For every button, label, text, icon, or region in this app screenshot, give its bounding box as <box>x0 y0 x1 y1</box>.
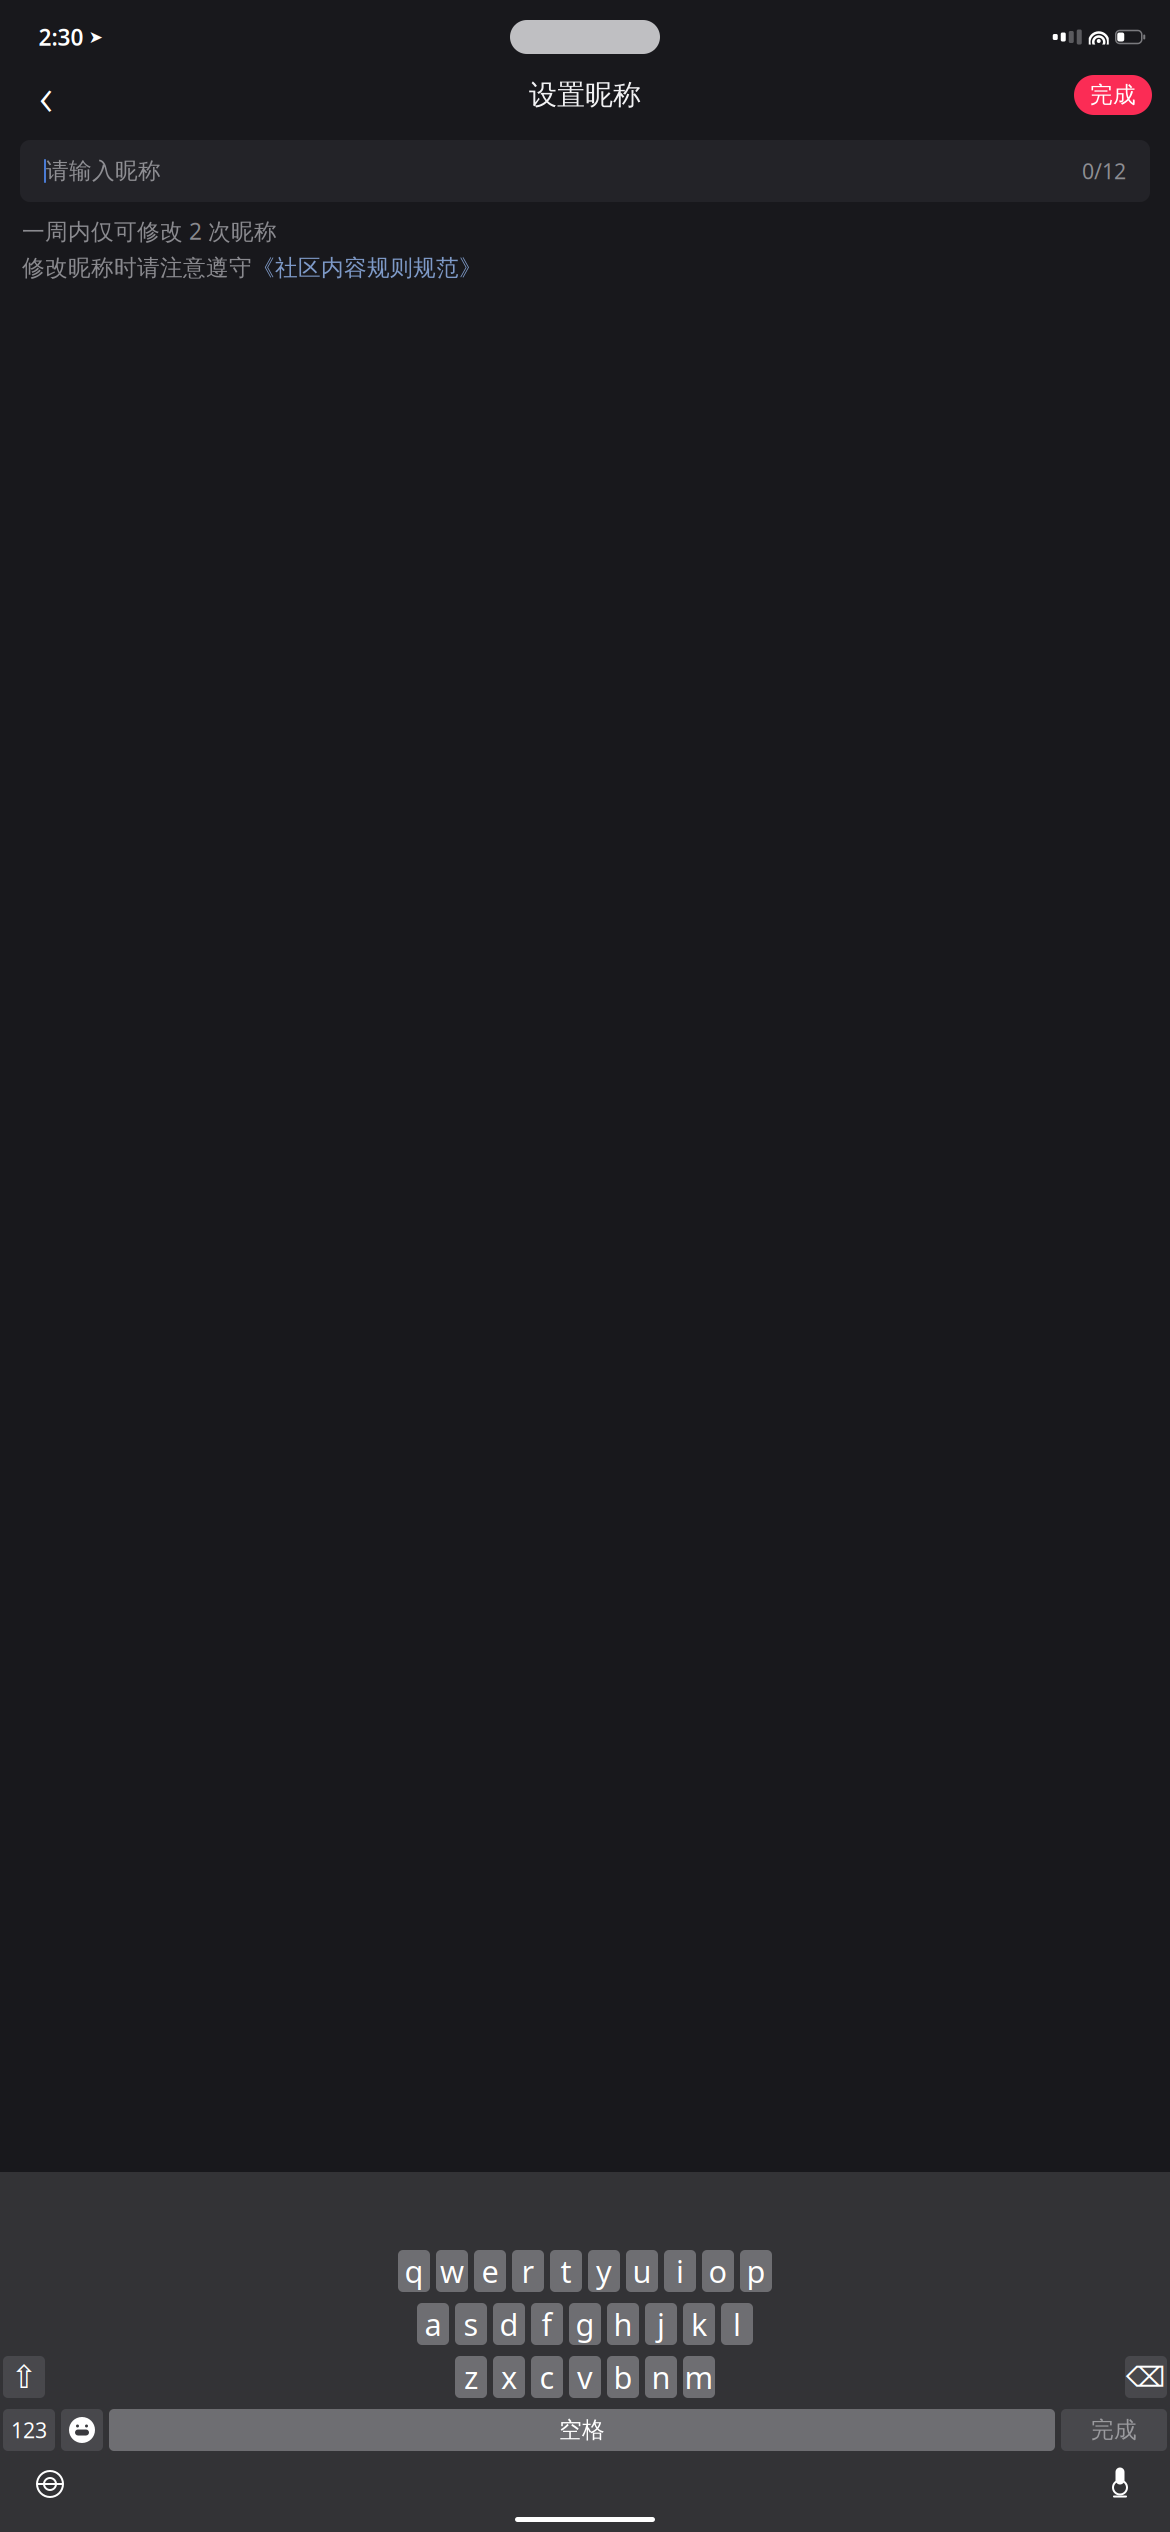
staticText: 完成 <box>1090 81 1136 109</box>
staticText: a <box>424 2304 441 2344</box>
staticText: 0/12 <box>1082 157 1126 185</box>
button[interactable]: b <box>607 2356 639 2398</box>
button[interactable]: 删除 <box>1125 2356 1167 2398</box>
staticText: m <box>684 2357 713 2397</box>
staticText: k <box>691 2304 707 2344</box>
button[interactable]: 返回 <box>18 71 74 119</box>
staticText: 空格 <box>559 2416 605 2444</box>
button[interactable]: 语音输入 <box>1090 2457 1150 2511</box>
staticText: 一周内仅可修改 2 次昵称 <box>22 216 277 246</box>
button[interactable]: n <box>645 2356 677 2398</box>
button[interactable]: p <box>740 2250 772 2292</box>
staticText: d <box>499 2304 518 2344</box>
button[interactable]: Shift <box>3 2356 45 2398</box>
staticText: c <box>539 2357 554 2397</box>
button[interactable]: u <box>626 2250 658 2292</box>
staticText: ‹ <box>39 60 53 130</box>
staticText: z <box>464 2357 478 2397</box>
button[interactable]: e <box>474 2250 506 2292</box>
staticText: w <box>440 2251 464 2291</box>
staticText: o <box>708 2251 727 2291</box>
staticText: 完成 <box>1091 2416 1137 2444</box>
staticText: 请输入昵称 <box>46 157 161 185</box>
staticText: t <box>560 2251 571 2291</box>
button[interactable]: l <box>721 2303 753 2345</box>
staticText: r <box>521 2251 534 2291</box>
staticText: e <box>481 2251 498 2291</box>
staticText: x <box>501 2357 517 2397</box>
staticText: 123 <box>11 2416 47 2444</box>
button[interactable]: t <box>550 2250 582 2292</box>
staticText: g <box>575 2304 594 2344</box>
button[interactable]: g <box>569 2303 601 2345</box>
staticText: h <box>613 2304 632 2344</box>
staticText: q <box>404 2251 423 2291</box>
button[interactable]: q <box>398 2250 430 2292</box>
staticText: s <box>463 2304 478 2344</box>
staticText: f <box>541 2304 552 2344</box>
button[interactable]: 表情 <box>61 2409 103 2451</box>
staticText: 修改昵称时请注意遵守 <box>22 254 252 282</box>
staticText: 《社区内容规则规范》 <box>252 254 482 282</box>
button[interactable]: h <box>607 2303 639 2345</box>
button[interactable]: a <box>417 2303 449 2345</box>
button[interactable]: v <box>569 2356 601 2398</box>
staticText: l <box>733 2304 741 2344</box>
button[interactable]: r <box>512 2250 544 2292</box>
button[interactable]: i <box>664 2250 696 2292</box>
button[interactable]: o <box>702 2250 734 2292</box>
staticText: ➤ <box>88 27 103 47</box>
staticText: 2:30 <box>38 22 83 52</box>
staticText: j <box>657 2304 665 2344</box>
button[interactable]: d <box>493 2303 525 2345</box>
button[interactable]: s <box>455 2303 487 2345</box>
button[interactable]: 完成 <box>1061 2409 1167 2451</box>
staticText: v <box>577 2357 593 2397</box>
button[interactable]: 切换键盘 <box>20 2457 80 2511</box>
staticText: b <box>613 2357 632 2397</box>
button[interactable]: 空格 <box>109 2409 1055 2451</box>
staticText: i <box>676 2251 684 2291</box>
button[interactable]: 完成 <box>1074 75 1152 115</box>
staticText: ⇧ <box>10 2359 37 2395</box>
staticText: u <box>632 2251 651 2291</box>
staticText: y <box>596 2251 612 2291</box>
staticText: p <box>746 2251 765 2291</box>
staticText: ⌫ <box>1126 2361 1166 2393</box>
button[interactable]: j <box>645 2303 677 2345</box>
button[interactable]: k <box>683 2303 715 2345</box>
staticText: 设置昵称 <box>529 78 641 112</box>
button[interactable]: y <box>588 2250 620 2292</box>
button[interactable]: f <box>531 2303 563 2345</box>
button[interactable]: m <box>683 2356 715 2398</box>
button[interactable]: x <box>493 2356 525 2398</box>
button[interactable]: z <box>455 2356 487 2398</box>
button[interactable]: 123 <box>3 2409 55 2451</box>
button[interactable]: w <box>436 2250 468 2292</box>
staticText: n <box>651 2357 670 2397</box>
button[interactable]: c <box>531 2356 563 2398</box>
button[interactable]: 《社区内容规则规范》 <box>252 254 482 282</box>
